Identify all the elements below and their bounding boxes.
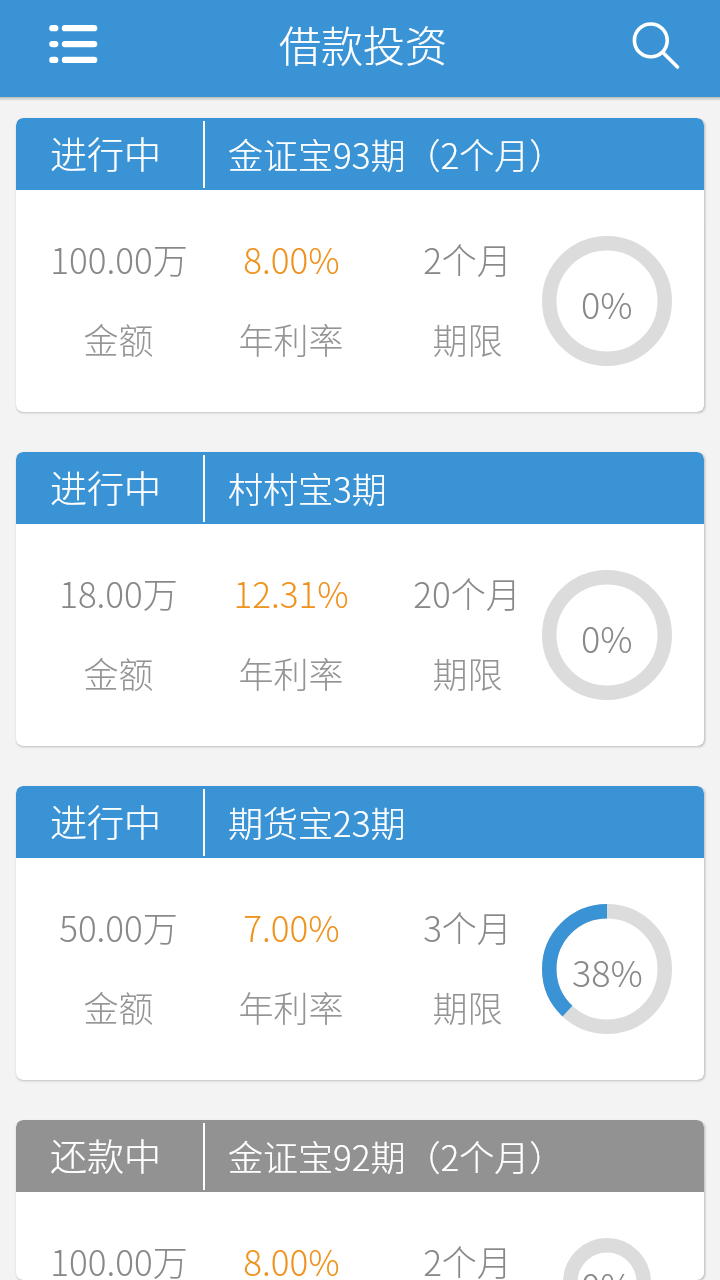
- staticText: 年利率: [238, 647, 344, 698]
- staticText: 38%: [572, 945, 643, 997]
- staticText: 50.00万: [59, 901, 178, 952]
- staticText: 20个月: [413, 567, 521, 618]
- button[interactable]: 进行中: [16, 786, 704, 1080]
- staticText: 进行中: [50, 794, 161, 848]
- staticText: 金证宝93期（2个月）: [228, 128, 565, 179]
- staticText: 金额: [83, 313, 154, 364]
- staticText: 0%: [581, 277, 633, 329]
- staticText: 期限: [432, 981, 503, 1032]
- staticText: 0%: [581, 1258, 633, 1280]
- staticText: 金额: [83, 981, 154, 1032]
- staticText: 金额: [83, 647, 154, 698]
- button[interactable]: Search: [620, 10, 690, 80]
- staticText: 8.00%: [243, 1235, 340, 1280]
- staticText: 期货宝23期: [228, 796, 406, 847]
- staticText: 期限: [432, 647, 503, 698]
- staticText: 100.00万: [50, 233, 188, 284]
- button[interactable]: 还款中: [16, 1120, 704, 1280]
- staticText: 还款中: [50, 1128, 161, 1182]
- staticText: 金证宝92期（2个月）: [228, 1130, 565, 1181]
- staticText: 7.00%: [243, 901, 340, 952]
- staticText: 村村宝3期: [228, 462, 387, 513]
- staticText: 2个月: [423, 233, 512, 284]
- staticText: 进行中: [50, 460, 161, 514]
- staticText: 年利率: [238, 981, 344, 1032]
- staticText: 100.00万: [50, 1235, 188, 1280]
- staticText: 2个月: [423, 1235, 512, 1280]
- button[interactable]: 进行中: [16, 452, 704, 746]
- staticText: 0%: [581, 611, 633, 663]
- button[interactable]: 进行中: [16, 118, 704, 412]
- staticText: 12.31%: [233, 567, 349, 618]
- staticText: 8.00%: [243, 233, 340, 284]
- staticText: 进行中: [50, 126, 161, 180]
- staticText: 3个月: [423, 901, 512, 952]
- staticText: 年利率: [238, 313, 344, 364]
- staticText: 借款投资: [279, 13, 448, 74]
- staticText: 期限: [432, 313, 503, 364]
- staticText: 18.00万: [59, 567, 178, 618]
- button[interactable]: Menu: [40, 14, 106, 74]
